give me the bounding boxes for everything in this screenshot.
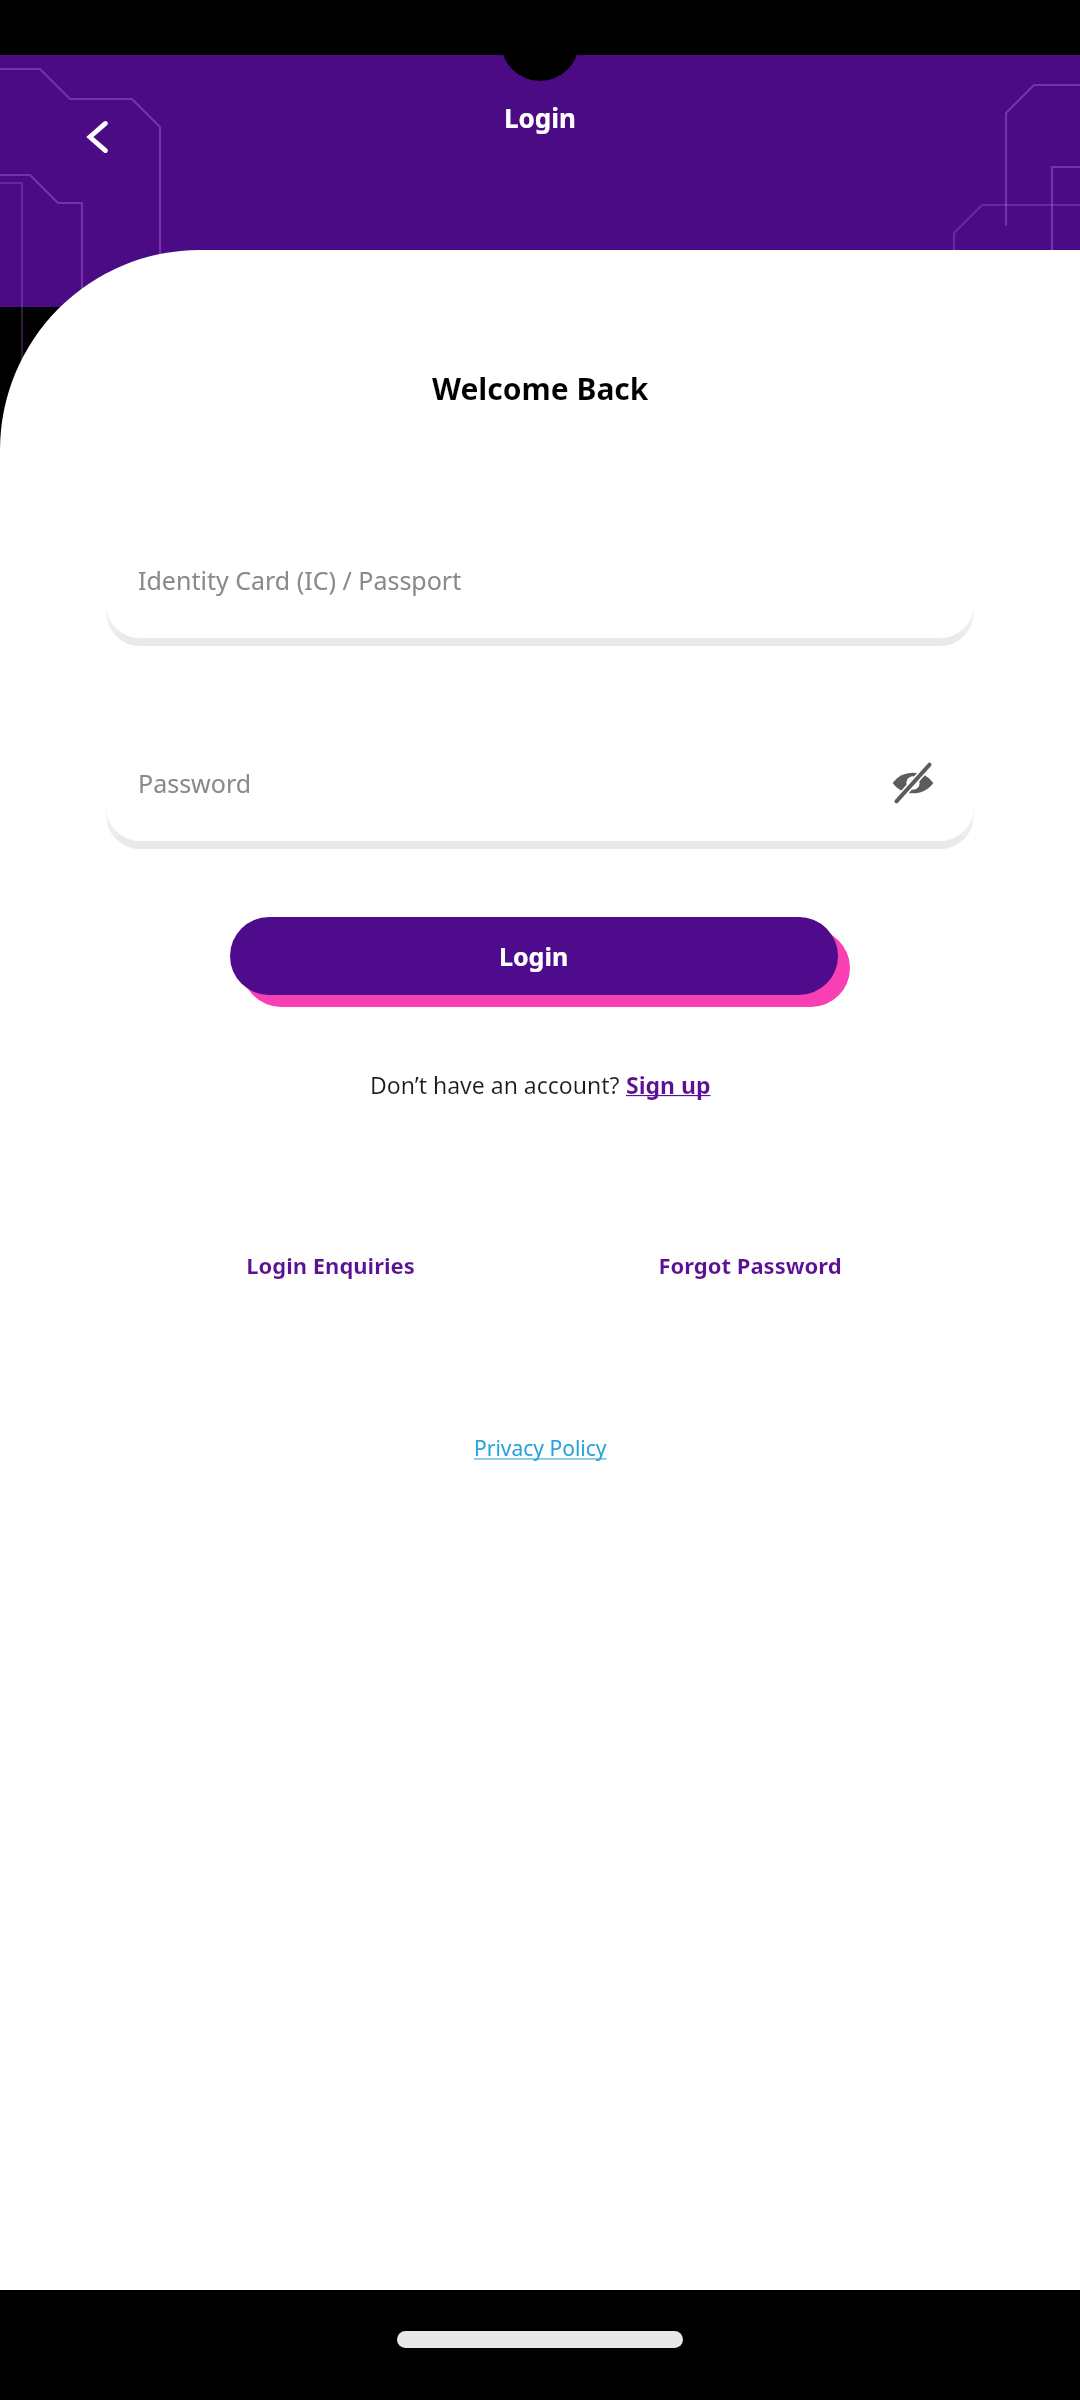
- button[interactable]: Back: [62, 101, 134, 173]
- staticText: Login Enquiries: [246, 1250, 415, 1280]
- button[interactable]: Privacy Policy: [466, 1430, 615, 1467]
- staticText: Password: [138, 766, 884, 800]
- button[interactable]: Identity Card (IC) / Passport: [106, 521, 974, 638]
- staticText: Login: [504, 100, 576, 135]
- staticText: Login: [499, 939, 569, 973]
- button[interactable]: Show password: [884, 754, 942, 812]
- button[interactable]: Password: [106, 724, 974, 841]
- staticText: Privacy Policy: [474, 1434, 607, 1463]
- button[interactable]: Login: [230, 917, 838, 995]
- staticText: Welcome Back: [432, 368, 649, 409]
- button[interactable]: Forgot Password: [600, 1250, 900, 1280]
- staticText: Sign up: [626, 1069, 711, 1100]
- button[interactable]: Login Enquiries: [180, 1250, 480, 1280]
- button[interactable]: Sign up: [626, 1069, 711, 1100]
- staticText: Identity Card (IC) / Passport: [138, 563, 942, 597]
- staticText: Don’t have an account?: [370, 1069, 626, 1100]
- staticText: Forgot Password: [658, 1250, 842, 1280]
